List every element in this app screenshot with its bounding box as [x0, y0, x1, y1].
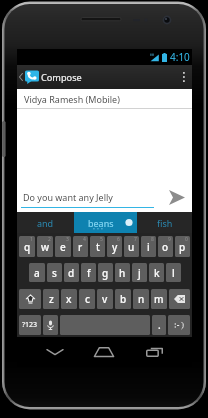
button[interactable]: Emoticon: [168, 315, 190, 335]
button[interactable]: u: [124, 236, 139, 257]
staticText: and: [37, 217, 54, 229]
button[interactable]: ?123: [19, 315, 41, 335]
button[interactable]: m: [151, 289, 167, 309]
button[interactable]: l: [166, 263, 181, 282]
button[interactable]: Back: [30, 337, 79, 367]
button[interactable]: Send: [162, 186, 192, 208]
button[interactable]: c: [79, 289, 95, 309]
staticText: fish: [157, 217, 173, 229]
button[interactable]: j: [132, 263, 147, 282]
staticText: u: [128, 240, 135, 254]
staticText: o: [162, 240, 169, 254]
button[interactable]: o: [158, 236, 173, 257]
staticText: 6: [117, 236, 120, 243]
button[interactable]: Vidya Ramesh (Mobile): [17, 89, 192, 108]
button[interactable]: Recent apps: [129, 337, 179, 367]
button[interactable]: y: [107, 236, 122, 257]
button[interactable]: .: [152, 315, 166, 335]
button[interactable]: v: [97, 289, 113, 309]
button[interactable]: Voice input: [43, 315, 58, 335]
button[interactable]: q: [19, 236, 35, 257]
staticText: d: [68, 266, 75, 280]
staticText: c: [85, 292, 90, 306]
staticText: Compose: [41, 71, 82, 84]
staticText: f: [87, 266, 91, 280]
button[interactable]: f: [81, 263, 96, 282]
staticText: w: [41, 240, 50, 254]
button[interactable]: e: [55, 236, 71, 257]
staticText: r: [78, 240, 83, 254]
staticText: s: [52, 266, 57, 280]
staticText: h: [119, 266, 126, 280]
button[interactable]: Shift: [19, 289, 41, 309]
staticText: 9: [168, 236, 171, 243]
staticText: 4:10: [170, 50, 190, 64]
staticText: ?123: [22, 320, 38, 330]
button[interactable]: w: [37, 236, 53, 257]
staticText: g: [102, 266, 109, 280]
staticText: 1: [30, 236, 33, 243]
staticText: q: [24, 240, 31, 254]
staticText: z: [49, 292, 54, 306]
staticText: k: [154, 266, 160, 280]
staticText: m: [154, 292, 164, 306]
button[interactable]: d: [64, 263, 79, 282]
staticText: t: [96, 240, 100, 254]
staticText: a: [34, 266, 40, 280]
staticText: b: [120, 292, 127, 306]
staticText: 7: [134, 236, 137, 243]
button[interactable]: b: [115, 289, 131, 309]
button[interactable]: h: [115, 263, 130, 282]
staticText: e: [60, 240, 66, 254]
staticText: v: [102, 292, 108, 306]
button[interactable]: z: [43, 289, 59, 309]
button[interactable]: and: [17, 212, 74, 233]
staticText: Vidya Ramesh (Mobile): [24, 93, 120, 105]
button[interactable]: r: [73, 236, 88, 257]
staticText: n: [138, 292, 145, 306]
staticText: Do you want any Jelly: [23, 191, 113, 203]
button[interactable]: n: [133, 289, 149, 309]
staticText: 0: [185, 236, 188, 243]
staticText: 2: [48, 236, 51, 243]
button[interactable]: g: [98, 263, 113, 282]
staticText: 4: [83, 236, 86, 243]
staticText: l: [172, 266, 175, 280]
button[interactable]: s: [47, 263, 62, 282]
staticText: i: [147, 240, 150, 254]
button[interactable]: Home: [79, 337, 129, 367]
staticText: 8: [151, 236, 154, 243]
staticText: p: [179, 240, 186, 254]
button[interactable]: Do you want any Jelly: [17, 191, 162, 208]
button[interactable]: beans: [74, 212, 137, 233]
button[interactable]: p: [175, 236, 190, 257]
button[interactable]: fish: [137, 212, 192, 233]
staticText: 5: [100, 236, 103, 243]
button[interactable]: t: [90, 236, 105, 257]
staticText: y: [112, 240, 118, 254]
button[interactable]: a: [29, 263, 45, 282]
staticText: beans: [88, 217, 114, 229]
staticText: .: [158, 318, 161, 332]
staticText: x: [66, 292, 72, 306]
button[interactable]: Delete: [169, 289, 190, 309]
staticText: 3: [66, 236, 69, 243]
button[interactable]: Navigate up: [17, 65, 39, 89]
staticText: j: [138, 266, 141, 280]
button[interactable]: x: [61, 289, 77, 309]
button[interactable]: k: [149, 263, 164, 282]
button[interactable]: i: [141, 236, 156, 257]
button[interactable]: More options: [176, 65, 192, 89]
